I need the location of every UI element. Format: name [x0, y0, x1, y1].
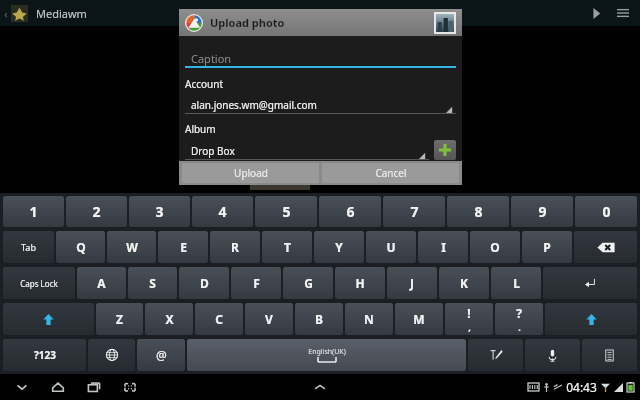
staticText: T: [284, 239, 291, 255]
button[interactable]: H: [335, 267, 385, 299]
staticText: L: [513, 275, 520, 291]
button[interactable]: 1: [3, 196, 64, 227]
staticText: K: [460, 275, 468, 291]
staticText: Drop Box: [191, 144, 235, 158]
button[interactable]: F: [231, 267, 281, 299]
staticText: G: [304, 275, 313, 291]
button[interactable]: Recent apps: [84, 377, 104, 397]
button[interactable]: Upload: [182, 163, 319, 183]
staticText: ,: [468, 321, 471, 333]
button[interactable]: B: [295, 303, 343, 335]
button[interactable]: Change language: [88, 339, 135, 371]
button[interactable]: Shift: [545, 303, 637, 335]
button[interactable]: 0: [575, 196, 637, 227]
staticText: Caps Lock: [20, 278, 58, 289]
button[interactable]: 3: [129, 196, 190, 227]
button[interactable]: 8: [447, 196, 509, 227]
button[interactable]: 5: [255, 196, 317, 227]
staticText: 9: [538, 202, 547, 221]
staticText: !: [467, 305, 471, 321]
button[interactable]: A: [77, 267, 126, 299]
button[interactable]: O: [470, 231, 520, 263]
button[interactable]: Caption: [185, 48, 456, 68]
button[interactable]: ?123: [3, 339, 86, 371]
button[interactable]: M: [395, 303, 443, 335]
button[interactable]: Voice input: [525, 339, 580, 371]
button[interactable]: ?: [495, 303, 543, 335]
button[interactable]: Handwriting input: [468, 339, 523, 371]
button[interactable]: Screenshot: [120, 377, 140, 397]
staticText: 1: [29, 202, 38, 221]
staticText: A: [97, 275, 106, 291]
staticText: alan.jones.wm@gmail.com: [191, 98, 317, 112]
staticText: J: [410, 275, 414, 291]
button[interactable]: New album: [434, 140, 456, 160]
button[interactable]: T: [262, 231, 312, 263]
button[interactable]: I: [418, 231, 468, 263]
button[interactable]: 9: [511, 196, 573, 227]
button[interactable]: K: [439, 267, 489, 299]
button[interactable]: R: [210, 231, 260, 263]
button[interactable]: J: [387, 267, 437, 299]
button[interactable]: Cancel: [322, 163, 459, 183]
button[interactable]: Home: [48, 377, 68, 397]
button[interactable]: Q: [56, 231, 105, 263]
button[interactable]: V: [245, 303, 293, 335]
staticText: 3: [155, 202, 164, 221]
button[interactable]: 2: [66, 196, 127, 227]
button[interactable]: Menu: [612, 2, 634, 24]
button[interactable]: Drop Box: [185, 142, 429, 160]
staticText: F: [253, 275, 260, 291]
button[interactable]: L: [491, 267, 541, 299]
button[interactable]: Space: [187, 339, 466, 371]
button[interactable]: 6: [319, 196, 381, 227]
staticText: E: [180, 239, 187, 255]
button[interactable]: !: [445, 303, 493, 335]
staticText: 04:43: [566, 379, 597, 395]
button[interactable]: Enter: [543, 267, 637, 299]
staticText: English(UK): [308, 347, 346, 357]
button[interactable]: N: [345, 303, 393, 335]
button[interactable]: Notifications: [313, 382, 327, 392]
button[interactable]: D: [179, 267, 229, 299]
staticText: 0: [602, 202, 611, 221]
staticText: Cancel: [375, 166, 407, 180]
staticText: H: [355, 275, 365, 291]
staticText: Z: [116, 311, 123, 327]
button[interactable]: 4: [192, 196, 253, 227]
button[interactable]: S: [128, 267, 177, 299]
button[interactable]: Hide keyboard: [12, 377, 32, 397]
staticText: .: [518, 321, 521, 333]
staticText: Tab: [21, 241, 36, 253]
button[interactable]: Z: [96, 303, 143, 335]
button[interactable]: W: [107, 231, 156, 263]
button[interactable]: Play: [586, 3, 606, 23]
button[interactable]: Y: [314, 231, 364, 263]
button[interactable]: U: [366, 231, 416, 263]
button[interactable]: Tab: [3, 231, 54, 263]
button[interactable]: 04:43: [528, 379, 634, 395]
button[interactable]: 7: [383, 196, 445, 227]
staticText: C: [215, 311, 223, 327]
button[interactable]: @: [137, 339, 185, 371]
button[interactable]: Shift: [3, 303, 94, 335]
staticText: P: [543, 239, 551, 255]
button[interactable]: P: [522, 231, 572, 263]
staticText: M: [413, 311, 425, 327]
staticText: Caption: [191, 51, 232, 66]
button[interactable]: Backspace: [574, 231, 637, 263]
staticText: Mediawm: [36, 6, 87, 21]
button[interactable]: Photo thumbnail: [436, 14, 454, 32]
staticText: I: [441, 239, 446, 255]
staticText: B: [315, 311, 323, 327]
button[interactable]: Caps Lock: [3, 267, 75, 299]
button[interactable]: alan.jones.wm@gmail.com: [185, 96, 456, 114]
staticText: V: [265, 311, 273, 327]
button[interactable]: X: [145, 303, 193, 335]
button[interactable]: Clipboard: [582, 339, 637, 371]
button[interactable]: E: [158, 231, 208, 263]
button[interactable]: G: [283, 267, 333, 299]
staticText: S: [149, 275, 156, 291]
staticText: @: [156, 347, 167, 363]
button[interactable]: C: [195, 303, 243, 335]
